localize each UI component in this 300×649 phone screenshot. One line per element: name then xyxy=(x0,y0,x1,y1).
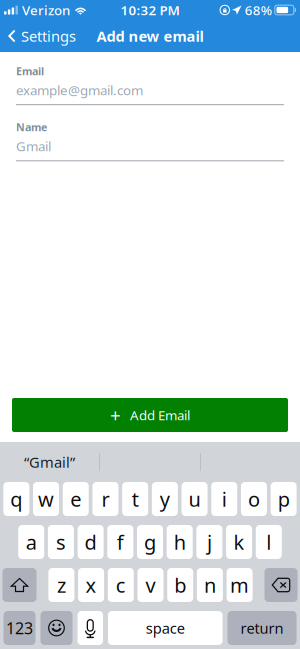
button[interactable]: j xyxy=(196,525,222,559)
staticText: a xyxy=(26,529,37,555)
staticText: x xyxy=(86,572,97,598)
staticText: e xyxy=(70,486,81,512)
button[interactable]: “Gmail” xyxy=(0,442,99,482)
staticText: “Gmail” xyxy=(24,452,75,472)
staticText: Settings xyxy=(21,26,76,46)
staticText: f xyxy=(117,529,124,555)
button[interactable]: u xyxy=(181,482,207,516)
staticText: + xyxy=(110,403,121,427)
button[interactable]: y xyxy=(152,482,178,516)
button[interactable]: e xyxy=(63,482,89,516)
button[interactable]: b xyxy=(167,568,193,602)
staticText: return xyxy=(240,618,283,638)
staticText: 10:32 PM xyxy=(120,1,179,19)
button[interactable]: q xyxy=(3,482,29,516)
button[interactable]: t xyxy=(122,482,148,516)
staticText: s xyxy=(56,529,66,555)
staticText: Add new email xyxy=(96,26,203,46)
button[interactable]: g xyxy=(137,525,163,559)
button[interactable]: x xyxy=(78,568,104,602)
button[interactable]: f xyxy=(107,525,133,559)
staticText: p xyxy=(278,486,290,512)
staticText: Add Email xyxy=(130,406,190,424)
button[interactable]: Settings xyxy=(0,21,82,51)
staticText: q xyxy=(10,486,22,512)
button[interactable]: Dictation xyxy=(77,611,103,645)
button[interactable]: w xyxy=(33,482,59,516)
button[interactable]: + xyxy=(12,398,288,432)
button[interactable]: n xyxy=(197,568,223,602)
staticText: w xyxy=(38,486,54,512)
staticText: Gmail xyxy=(16,137,51,155)
staticText: i xyxy=(222,486,227,512)
staticText: space xyxy=(146,618,185,638)
staticText: y xyxy=(160,486,170,512)
staticText: v xyxy=(145,572,155,598)
button[interactable]: m xyxy=(227,568,253,602)
staticText: 123 xyxy=(6,617,33,639)
button[interactable]: return xyxy=(227,611,296,645)
button[interactable]: l xyxy=(256,525,282,559)
staticText: b xyxy=(174,572,186,598)
button[interactable]: v xyxy=(137,568,163,602)
staticText: j xyxy=(207,529,212,555)
staticText: example@gmail.com xyxy=(16,81,143,99)
button[interactable]: 123 xyxy=(3,611,35,645)
staticText: l xyxy=(266,529,271,555)
staticText: g xyxy=(144,529,156,555)
staticText: u xyxy=(188,486,200,512)
staticText: r xyxy=(101,486,109,512)
staticText: Name xyxy=(16,120,47,134)
button[interactable]: i xyxy=(211,482,237,516)
staticText: Verizon xyxy=(22,1,70,19)
button[interactable]: s xyxy=(48,525,74,559)
button[interactable]: h xyxy=(167,525,193,559)
button[interactable]: Shift xyxy=(2,568,36,602)
staticText: n xyxy=(204,572,216,598)
button[interactable]: Delete xyxy=(264,568,297,602)
button[interactable]: p xyxy=(271,482,297,516)
staticText: Email xyxy=(16,64,44,78)
button[interactable]: z xyxy=(48,568,74,602)
button[interactable]: d xyxy=(78,525,104,559)
staticText: t xyxy=(132,486,139,512)
button[interactable]: a xyxy=(18,525,44,559)
button[interactable]: space xyxy=(108,611,222,645)
staticText: o xyxy=(248,486,260,512)
button[interactable]: o xyxy=(241,482,267,516)
staticText: 68% xyxy=(245,1,272,19)
staticText: m xyxy=(230,572,249,598)
button[interactable]: k xyxy=(226,525,252,559)
staticText: c xyxy=(116,572,126,598)
button[interactable]: r xyxy=(92,482,118,516)
staticText: d xyxy=(85,529,97,555)
staticText: z xyxy=(57,572,66,598)
button[interactable]: Emoji xyxy=(40,611,72,645)
staticText: h xyxy=(174,529,186,555)
staticText: k xyxy=(234,529,245,555)
button[interactable]: c xyxy=(108,568,134,602)
